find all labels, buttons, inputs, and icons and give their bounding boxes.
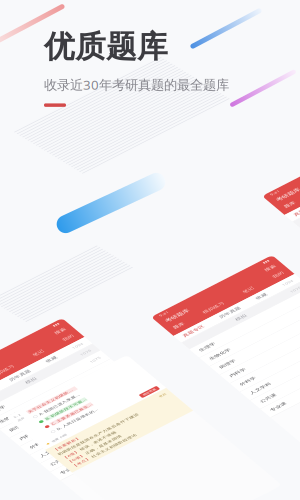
- staticText: 9:41: [160, 319, 174, 328]
- staticText: 收录近30年考研真题的最全题库: [44, 76, 229, 93]
- staticText: 考研题库: [271, 213, 300, 224]
- staticText: 内科学: [270, 378, 294, 388]
- staticText: 历年真题: [217, 379, 249, 389]
- staticText: 优质题库: [44, 28, 168, 66]
- staticText: 9:41: [271, 198, 285, 207]
- staticText: 总分: [13, 432, 23, 439]
- staticText: 关于社会主义初级阶段的论述正确: [33, 425, 107, 434]
- staticText: 考研题库: [160, 334, 196, 345]
- staticText: C. 主要矛盾已发生变化: [42, 470, 104, 479]
- staticText: 收藏: [65, 442, 81, 452]
- staticText: A. 我国已进入发展新阶段: [41, 440, 105, 449]
- staticText: 历年真题: [7, 442, 39, 452]
- staticText: 外科学: [270, 404, 294, 414]
- staticText: 模拟练习: [207, 355, 239, 364]
- staticText: 1094: [106, 443, 122, 451]
- staticText: B. 初级阶段不可逾越: [42, 455, 104, 464]
- staticText: 模拟练习: [0, 418, 29, 427]
- staticText: 我的: [106, 418, 122, 427]
- staticText: 5 - 2: [13, 422, 23, 429]
- staticText: 笔记: [59, 418, 75, 427]
- staticText: 生理学: [270, 301, 294, 311]
- staticText: 生理学: [159, 422, 183, 432]
- staticText: 真题专区: [271, 258, 300, 268]
